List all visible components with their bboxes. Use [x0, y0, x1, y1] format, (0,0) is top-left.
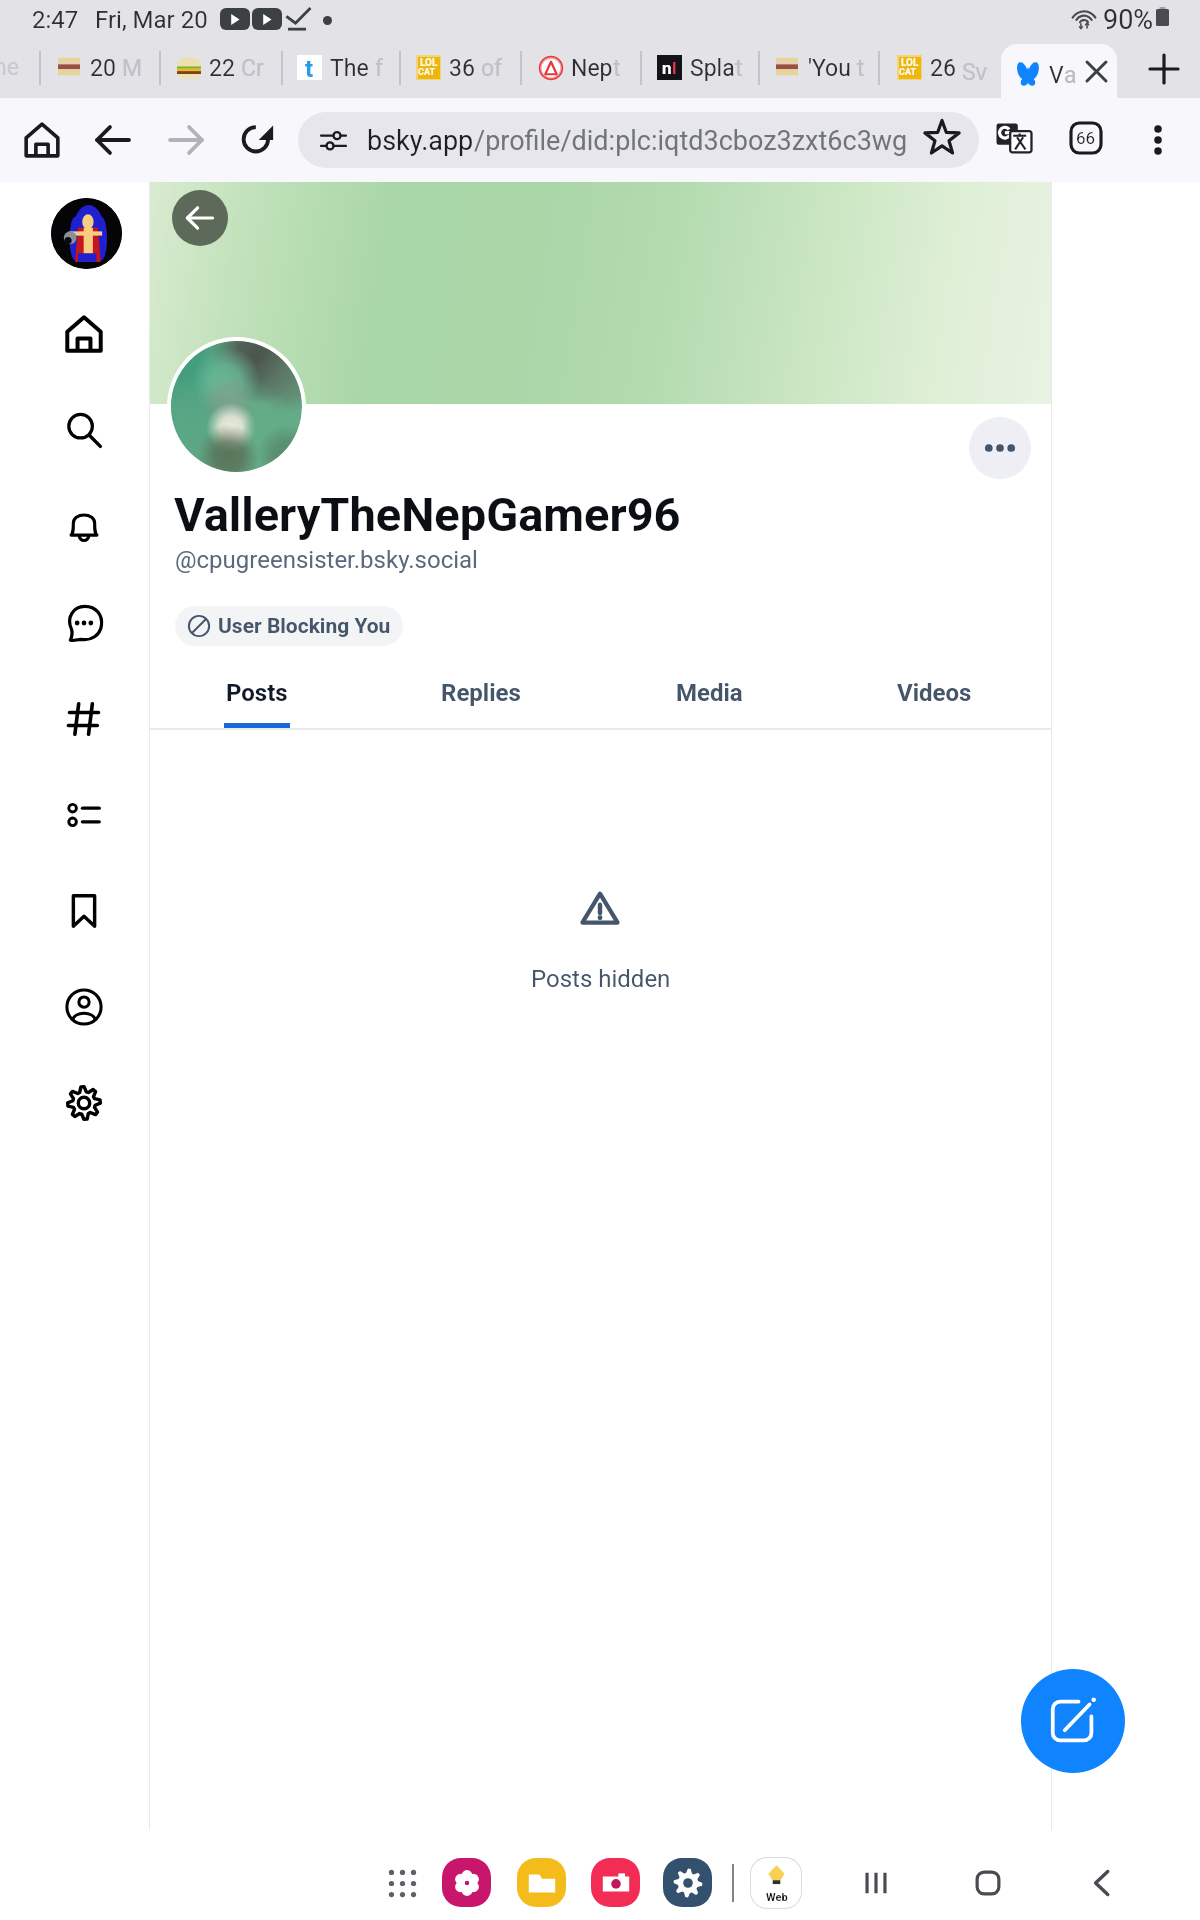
button[interactable]: New post: [1021, 1669, 1125, 1773]
button[interactable]: App: [517, 1858, 566, 1907]
button[interactable]: More: [969, 417, 1031, 479]
button[interactable]: bsky.app: [298, 112, 979, 168]
button[interactable]: Translate: [986, 110, 1042, 166]
staticText: Sᴠ: [962, 55, 987, 86]
button[interactable]: Home: [36, 286, 132, 382]
staticText: Posts: [226, 679, 288, 707]
staticText: 'You: [808, 55, 851, 82]
staticText: CATS!: [899, 67, 921, 79]
staticText: CATS!: [418, 67, 440, 79]
staticText: Spla: [690, 55, 735, 82]
staticText: M: [122, 55, 143, 82]
button[interactable]: More options: [1130, 112, 1186, 168]
button[interactable]: Reload: [230, 112, 286, 168]
button[interactable]: Close tab: [1079, 54, 1113, 88]
staticText: Replies: [441, 679, 521, 707]
staticText: Cr: [241, 55, 264, 82]
staticText: of: [481, 55, 503, 82]
staticText: 66: [1076, 128, 1096, 148]
button[interactable]: Bookmark: [914, 109, 970, 165]
button[interactable]: V: [1001, 44, 1117, 98]
button[interactable]: Chat: [36, 575, 132, 671]
button[interactable]: Recents: [846, 1853, 906, 1913]
staticText: ne: [0, 54, 19, 81]
staticText: @cpugreensister.bsky.social: [175, 546, 478, 574]
button[interactable]: All apps: [375, 1856, 429, 1910]
staticText: t: [613, 55, 621, 82]
staticText: 2:47: [32, 6, 79, 34]
button[interactable]: New tab: [1144, 49, 1184, 89]
button[interactable]: LOL: [416, 38, 470, 98]
staticText: V: [1049, 62, 1064, 89]
button[interactable]: Profile page: [36, 959, 132, 1055]
button[interactable]: Saved: [36, 863, 132, 959]
button[interactable]: Web: [750, 1857, 802, 1909]
staticText: LOL: [901, 57, 919, 68]
staticText: ValleryTheNepGamer96: [174, 487, 681, 542]
staticText: bsky.app: [367, 125, 474, 157]
button[interactable]: Replies: [411, 667, 551, 728]
staticText: The: [330, 55, 375, 82]
staticText: n: [662, 58, 672, 78]
staticText: 26: [930, 55, 962, 82]
button[interactable]: Forward: [158, 112, 214, 168]
staticText: Videos: [897, 679, 972, 707]
staticText: /profile/did:plc:iqtd3cboz3zxt6c3wg: [474, 125, 908, 157]
staticText: Posts hidden: [531, 965, 671, 993]
button[interactable]: n: [657, 38, 710, 98]
button[interactable]: App: [591, 1858, 640, 1907]
staticText: Media: [676, 679, 743, 707]
staticText: f: [375, 55, 383, 82]
button[interactable]: Media: [639, 667, 779, 728]
button[interactable]: Home: [958, 1853, 1018, 1913]
button[interactable]: Home: [14, 112, 70, 168]
button[interactable]: 22: [176, 38, 231, 98]
button[interactable]: Back: [172, 190, 228, 246]
button[interactable]: Feeds: [36, 671, 132, 767]
staticText: 90%: [1103, 4, 1154, 36]
button[interactable]: Back: [1072, 1853, 1132, 1913]
staticText: User Blocking You: [218, 614, 391, 639]
button[interactable]: Avatar: [171, 341, 302, 472]
button[interactable]: Settings: [36, 1055, 132, 1151]
staticText: 22: [209, 55, 241, 82]
staticText: Web: [766, 1891, 788, 1904]
button[interactable]: Tabs: [1058, 110, 1114, 166]
staticText: Nep: [571, 55, 613, 82]
button[interactable]: Back: [85, 112, 141, 168]
button[interactable]: Posts: [187, 667, 327, 728]
button[interactable]: Notifications: [36, 478, 132, 574]
staticText: 20: [90, 55, 122, 82]
staticText: l: [672, 58, 677, 78]
button[interactable]: Videos: [864, 667, 1004, 728]
button[interactable]: t: [297, 38, 350, 98]
button[interactable]: 20: [57, 38, 110, 98]
button[interactable]: Nep: [538, 38, 588, 98]
button[interactable]: Search: [36, 382, 132, 478]
staticText: t: [305, 55, 314, 80]
button[interactable]: Profile: [51, 198, 122, 269]
staticText: 36: [449, 55, 481, 82]
button[interactable]: 'You: [775, 38, 832, 98]
button[interactable]: App: [663, 1858, 712, 1907]
button[interactable]: User Blocking You: [175, 606, 403, 646]
button[interactable]: App: [442, 1858, 491, 1907]
staticText: LOL: [420, 57, 438, 68]
staticText: a: [1064, 62, 1077, 89]
button[interactable]: LOL: [897, 38, 954, 98]
staticText: t: [735, 55, 743, 82]
staticText: Fri, Mar 20: [95, 6, 208, 34]
staticText: t: [851, 55, 865, 82]
button[interactable]: Lists: [36, 767, 132, 863]
